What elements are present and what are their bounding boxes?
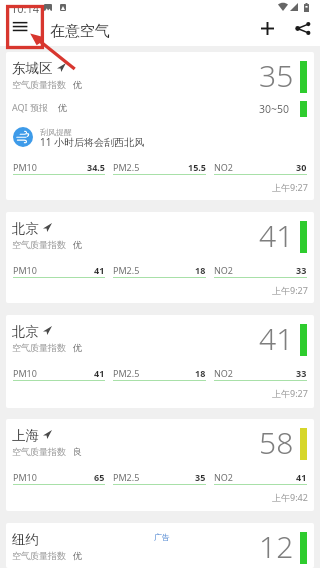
staticText: 空气质量指数 xyxy=(12,79,66,90)
staticText: 65 xyxy=(94,471,105,483)
staticText: 在意空气 xyxy=(50,22,110,41)
staticText: 上海 xyxy=(12,427,39,444)
staticText: NO2 xyxy=(214,264,234,276)
staticText: 41 xyxy=(296,471,307,483)
staticText: 上午9:27 xyxy=(272,284,308,296)
staticText: PM10 xyxy=(13,367,37,379)
staticText: 12 xyxy=(259,526,294,567)
button[interactable]: Menu xyxy=(6,16,34,44)
staticText: PM10 xyxy=(13,161,37,173)
button[interactable]: Add xyxy=(255,16,279,40)
staticText: 35 xyxy=(259,55,294,96)
staticText: 10:14 xyxy=(11,1,40,15)
staticText: 广告 xyxy=(154,532,170,542)
button[interactable]: 北京 xyxy=(6,315,314,408)
button[interactable]: 东城区 xyxy=(6,52,314,200)
staticText: 33 xyxy=(296,264,307,276)
staticText: 优 xyxy=(73,239,82,250)
button[interactable]: 上海 xyxy=(6,419,314,511)
staticText: 58 xyxy=(259,422,294,463)
staticText: 11 小时后将会刮西北风 xyxy=(40,135,145,149)
staticText: 30~50 xyxy=(259,102,290,116)
staticText: PM2.5 xyxy=(113,264,140,276)
staticText: 35 xyxy=(195,471,206,483)
staticText: 空气质量指数 xyxy=(12,239,66,250)
staticText: PM10 xyxy=(13,264,37,276)
staticText: 上午9:27 xyxy=(272,387,308,399)
staticText: NO2 xyxy=(214,367,234,379)
staticText: 41 xyxy=(259,215,294,256)
staticText: 34.5 xyxy=(87,161,105,173)
staticText: PM2.5 xyxy=(113,161,140,173)
staticText: 33 xyxy=(296,367,307,379)
button[interactable]: 北京 xyxy=(6,212,314,303)
staticText: 优 xyxy=(73,342,82,353)
staticText: NO2 xyxy=(214,161,234,173)
staticText: 空气质量指数 xyxy=(12,550,66,561)
staticText: 东城区 xyxy=(12,60,53,77)
staticText: 18 xyxy=(195,264,206,276)
staticText: 30 xyxy=(296,161,307,173)
staticText: NO2 xyxy=(214,471,234,483)
staticText: PM2.5 xyxy=(113,367,140,379)
staticText: PM2.5 xyxy=(113,471,140,483)
staticText: 良 xyxy=(73,446,82,457)
staticText: 纽约 xyxy=(12,531,39,548)
staticText: 41 xyxy=(94,264,105,276)
staticText: 北京 xyxy=(12,220,39,237)
staticText: 空气质量指数 xyxy=(12,342,66,353)
staticText: 18 xyxy=(195,367,206,379)
staticText: 41 xyxy=(94,367,105,379)
staticText: 北京 xyxy=(12,323,39,340)
staticText: 优 xyxy=(73,79,82,90)
staticText: 优 xyxy=(58,102,67,113)
staticText: AQI 预报 xyxy=(12,101,48,113)
staticText: 上午9:27 xyxy=(272,181,308,193)
staticText: 空气质量指数 xyxy=(12,446,66,457)
staticText: 上午9:42 xyxy=(272,491,308,503)
staticText: 15.5 xyxy=(188,161,206,173)
button[interactable]: Share xyxy=(291,16,315,40)
staticText: 刮风提醒 xyxy=(40,127,72,137)
staticText: 41 xyxy=(259,318,294,359)
staticText: 优 xyxy=(73,550,82,561)
button[interactable]: 纽约 xyxy=(6,523,314,568)
staticText: PM10 xyxy=(13,471,37,483)
